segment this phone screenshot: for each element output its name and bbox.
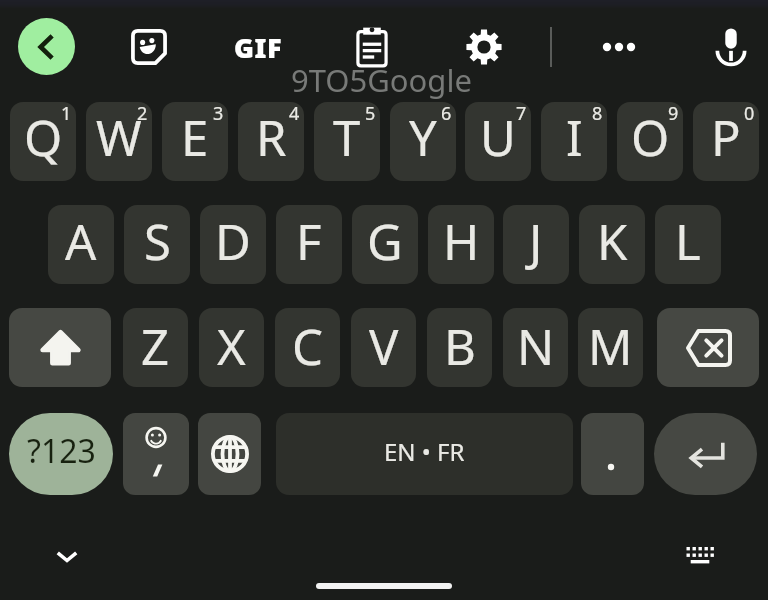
button[interactable]: V	[351, 308, 416, 387]
staticText: Y	[409, 104, 437, 171]
button[interactable]: R	[238, 102, 304, 181]
button[interactable]: T	[314, 102, 380, 181]
staticText: L	[675, 208, 701, 275]
button[interactable]: Shift	[9, 308, 111, 387]
staticText: Q	[24, 104, 63, 171]
staticText: P	[711, 104, 741, 171]
button[interactable]: K	[579, 205, 645, 284]
button[interactable]: Emoji	[123, 413, 189, 495]
staticText: N	[517, 313, 555, 380]
button[interactable]: Stickers	[127, 25, 171, 69]
staticText: W	[96, 104, 142, 171]
staticText: EN • FR	[384, 435, 465, 468]
staticText: G	[367, 208, 403, 275]
button[interactable]: X	[199, 308, 264, 387]
staticText: X	[217, 313, 246, 380]
button[interactable]: C	[275, 308, 340, 387]
button[interactable]: M	[578, 308, 643, 387]
button[interactable]: U	[465, 102, 531, 181]
staticText: O	[631, 104, 670, 171]
staticText: 1	[61, 102, 72, 126]
button[interactable]: EN • FR	[276, 413, 573, 495]
button[interactable]: Enter	[654, 413, 757, 495]
staticText: B	[444, 313, 476, 380]
staticText: A	[65, 208, 97, 275]
button[interactable]: B	[427, 308, 492, 387]
staticText: 7	[516, 102, 527, 126]
staticText: U	[480, 104, 516, 171]
staticText: 2	[137, 102, 148, 126]
staticText: J	[529, 208, 543, 275]
staticText: 6	[441, 102, 452, 126]
button[interactable]: L	[655, 205, 721, 284]
button[interactable]: Settings	[462, 25, 506, 69]
staticText: 8	[592, 102, 603, 126]
button[interactable]: ?123	[9, 413, 113, 495]
button[interactable]: Period	[581, 413, 644, 495]
button[interactable]: P	[693, 102, 759, 181]
button[interactable]: N	[503, 308, 568, 387]
staticText: T	[333, 104, 361, 171]
button[interactable]: Voice input	[709, 24, 753, 68]
button[interactable]: H	[428, 205, 494, 284]
button[interactable]: F	[276, 205, 342, 284]
button[interactable]: Q	[10, 102, 76, 181]
button[interactable]: Backspace	[657, 308, 759, 387]
staticText: 3	[213, 102, 224, 126]
staticText: V	[369, 313, 399, 380]
button[interactable]: J	[503, 205, 569, 284]
staticText: 4	[289, 102, 300, 126]
staticText: R	[256, 104, 287, 171]
button[interactable]: Switch keyboard	[678, 533, 722, 577]
staticText: D	[215, 208, 251, 275]
button[interactable]: Clipboard	[350, 25, 394, 69]
button[interactable]: Y	[390, 102, 456, 181]
staticText: S	[144, 208, 171, 275]
button[interactable]: Change language	[198, 413, 261, 495]
button[interactable]: W	[86, 102, 152, 181]
button[interactable]: GIF	[228, 23, 288, 71]
button[interactable]: G	[352, 205, 418, 284]
staticText: 9TO5Google	[291, 59, 472, 101]
staticText: GIF	[234, 29, 283, 66]
staticText: 0	[744, 102, 755, 126]
button[interactable]: More options	[597, 25, 641, 69]
staticText: E	[181, 104, 209, 171]
staticText: F	[296, 208, 322, 275]
button[interactable]: I	[541, 102, 607, 181]
staticText: C	[292, 313, 323, 380]
staticText: 5	[365, 102, 376, 126]
staticText: 9	[668, 102, 679, 126]
staticText: I	[566, 104, 583, 171]
button[interactable]: A	[48, 205, 114, 284]
staticText: ?123	[27, 429, 96, 473]
staticText: K	[597, 208, 628, 275]
staticText: Z	[141, 313, 170, 380]
button[interactable]: Z	[123, 308, 188, 387]
button[interactable]: D	[200, 205, 266, 284]
button[interactable]: E	[162, 102, 228, 181]
button[interactable]: Hide keyboard	[45, 532, 89, 576]
button[interactable]: O	[617, 102, 683, 181]
button[interactable]: S	[124, 205, 190, 284]
staticText: M	[588, 313, 633, 380]
staticText: H	[443, 208, 480, 275]
button[interactable]: Back	[18, 18, 75, 75]
